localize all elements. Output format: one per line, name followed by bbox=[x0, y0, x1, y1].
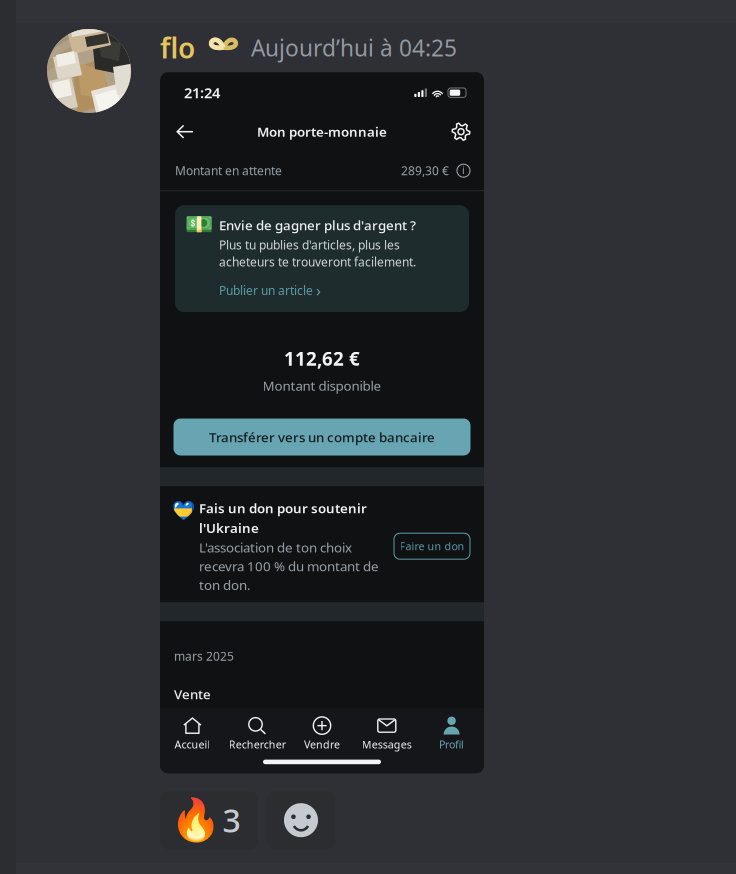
staticText: Accueil bbox=[174, 737, 210, 751]
staticText: Publier un article bbox=[219, 282, 313, 298]
staticText: acheteurs te trouveront facilement. bbox=[219, 254, 416, 270]
staticText: Fais un don pour soutenir bbox=[199, 499, 367, 517]
staticText: 3 bbox=[222, 799, 240, 841]
staticText: 289,30 € bbox=[401, 163, 449, 179]
button[interactable]: Messages bbox=[354, 712, 419, 756]
staticText: i bbox=[462, 163, 465, 177]
staticText: +0,00 € bbox=[423, 707, 470, 724]
staticText: 112,62 € bbox=[284, 346, 360, 371]
staticText: Montant en attente bbox=[175, 163, 282, 179]
staticText: flo bbox=[160, 29, 195, 66]
button[interactable]: Accueil bbox=[160, 712, 225, 756]
staticText: l'Ukraine bbox=[199, 519, 259, 537]
staticText: Envie de gagner plus d'argent ? bbox=[219, 216, 416, 234]
button[interactable]: Retour bbox=[172, 119, 198, 145]
staticText: Profil bbox=[439, 737, 464, 751]
staticText: Rechercher bbox=[229, 737, 286, 751]
staticText: Reçu lettre recommandée bbox=[174, 707, 334, 724]
staticText: 🔥 bbox=[170, 797, 221, 844]
staticText: ton don. bbox=[199, 576, 251, 594]
staticText: 💙 bbox=[171, 500, 194, 521]
staticText: › bbox=[316, 280, 321, 301]
button[interactable]: Transférer vers un compte bancaire bbox=[173, 418, 470, 455]
staticText: 21:24 bbox=[184, 83, 220, 102]
staticText: Montant disponible bbox=[262, 377, 381, 394]
button[interactable]: Réglages bbox=[448, 119, 474, 145]
button[interactable]: Profil bbox=[419, 712, 484, 756]
staticText: Faire un don bbox=[399, 539, 464, 553]
staticText: L'association de ton choix bbox=[199, 539, 352, 556]
button[interactable]: 🔥 bbox=[160, 791, 258, 849]
button[interactable]: Vendre bbox=[290, 712, 354, 756]
button[interactable]: Rechercher bbox=[225, 712, 290, 756]
staticText: 💵 bbox=[184, 212, 212, 238]
staticText: mars 2025 bbox=[174, 648, 234, 664]
staticText: Mon porte-monnaie bbox=[257, 123, 387, 140]
staticText: recevra 100 % du montant de bbox=[199, 557, 379, 575]
button[interactable]: Faire un don bbox=[394, 533, 470, 559]
staticText: 💛 bbox=[171, 500, 194, 521]
button[interactable]: Publier un article bbox=[219, 270, 321, 301]
button[interactable]: Ajouter une réaction bbox=[267, 791, 335, 849]
button[interactable]: flo bbox=[160, 29, 195, 66]
staticText: Vendre bbox=[304, 737, 340, 751]
staticText: Plus tu publies d'articles, plus les bbox=[219, 237, 400, 253]
staticText: Aujourd’hui à 04:25 bbox=[251, 32, 457, 63]
staticText: Transférer vers un compte bancaire bbox=[209, 428, 435, 446]
staticText: Messages bbox=[362, 737, 412, 751]
staticText: Vente bbox=[174, 685, 211, 703]
